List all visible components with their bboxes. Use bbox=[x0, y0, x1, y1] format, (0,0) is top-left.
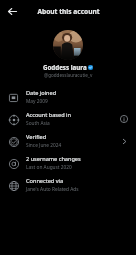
staticText: Goddess laura bbox=[43, 63, 87, 71]
staticText: Connected via bbox=[26, 177, 64, 185]
staticText: Account based in bbox=[26, 111, 71, 119]
button[interactable]: Verified bbox=[0, 130, 136, 152]
button[interactable]: Account based in bbox=[0, 108, 136, 130]
staticText: Last on August 2020 bbox=[26, 164, 72, 171]
button[interactable]: Date joined bbox=[0, 86, 136, 108]
button[interactable]: Profile photo bbox=[53, 30, 83, 60]
staticText: Verified bbox=[26, 133, 47, 141]
staticText: Since June 2024 bbox=[26, 142, 62, 149]
staticText: Date joined bbox=[26, 89, 57, 97]
staticText: May 2009 bbox=[26, 98, 48, 105]
button[interactable]: Connected via bbox=[0, 174, 136, 196]
button[interactable]: 2 username changes bbox=[0, 152, 136, 174]
button[interactable]: More information bbox=[118, 113, 130, 125]
staticText: South Asia bbox=[26, 120, 50, 127]
staticText: About this account bbox=[37, 7, 100, 16]
staticText: @goddesslauracutie_v bbox=[44, 72, 93, 78]
staticText: 2 username changes bbox=[26, 155, 81, 163]
button[interactable]: Back bbox=[4, 3, 20, 19]
staticText: Jane's Auto Related Ads bbox=[26, 186, 79, 193]
